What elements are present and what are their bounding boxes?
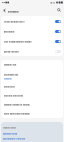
staticText: Volání pomocí Wi-Fi <box>4 20 25 23</box>
staticText: Mobilní sítě <box>4 64 17 67</box>
staticText: Hledáte něco? <box>3 127 16 130</box>
staticText: Zabezpečení a ochrana <box>3 137 26 140</box>
staticText: Samsung Cloud <box>3 133 18 136</box>
staticText: Další nastavení připojení <box>4 112 30 115</box>
button[interactable]: Použít dat <box>1 82 63 91</box>
button[interactable]: Mobilní sítě <box>1 60 63 69</box>
button[interactable]: Bluetooth <box>1 26 63 36</box>
staticText: Volání pomocí Wi-Fi <box>4 21 25 24</box>
staticText: NFC a bezkontaktní platby <box>4 41 32 44</box>
staticText: Připojení <box>8 10 19 13</box>
staticText: Bluetooth <box>4 30 15 33</box>
staticText: Správce SIM karet <box>4 94 23 97</box>
button[interactable]: Správce SIM karet <box>1 91 63 100</box>
staticText: Použít dat <box>4 86 15 89</box>
staticText: Režim Letadlo <box>4 50 19 53</box>
button[interactable]: Volání pomocí Wi-Fi <box>1 16 63 26</box>
staticText: Používání dat <box>4 74 19 77</box>
staticText: Mobilní hotspot a sdílení <box>4 104 30 107</box>
button[interactable]: Režim Letadlo <box>1 46 63 56</box>
staticText: Mobilní sítě <box>4 63 17 66</box>
button[interactable]: Používání dat <box>1 69 63 82</box>
staticText: Vypnuto <box>4 77 12 79</box>
button[interactable]: Mobilní hotspot a sdílení <box>1 100 63 109</box>
button[interactable]: NFC a bezkontaktní platby <box>1 36 63 46</box>
staticText: Vypnuto <box>4 78 12 80</box>
staticText: Připojení <box>8 9 19 12</box>
staticText: Hledáte něco? <box>3 126 16 129</box>
staticText: Používání dat <box>4 73 19 76</box>
button[interactable]: Search <box>55 6 63 14</box>
staticText: NFC a bezkontaktní platby <box>4 40 32 43</box>
staticText: Bluetooth <box>4 31 15 34</box>
staticText: Zabezpečení a ochrana <box>3 138 26 141</box>
staticText: 16:14 <box>50 2 55 5</box>
staticText: Použít dat <box>4 85 15 88</box>
staticText: Režim Letadlo <box>4 51 19 54</box>
staticText: Samsung Cloud <box>3 132 18 135</box>
staticText: Mobilní hotspot a sdílení <box>4 103 30 106</box>
button[interactable]: Back <box>0 6 8 14</box>
staticText: 16:14 <box>50 1 55 4</box>
staticText: Správce SIM karet <box>4 95 23 98</box>
button[interactable]: Další nastavení připojení <box>1 109 63 118</box>
staticText: Další nastavení připojení <box>4 113 30 116</box>
